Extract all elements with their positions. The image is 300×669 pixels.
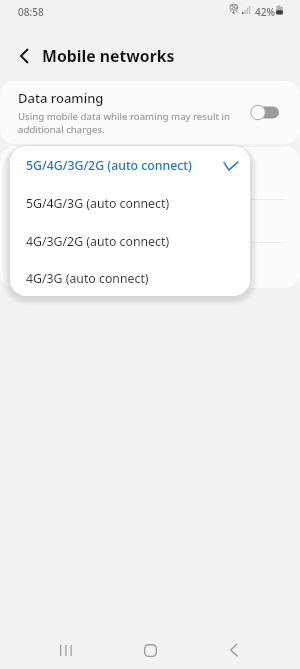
staticText: Mobile networks <box>42 45 175 67</box>
button[interactable]: Navigate up <box>6 36 42 76</box>
button[interactable]: 5G/4G/3G (auto connect) <box>10 184 250 222</box>
staticText: 4G/3G/2G (auto connect) <box>26 233 170 250</box>
button[interactable]: 5G/4G/3G/2G (auto connect) <box>10 146 250 184</box>
staticText: 5G <box>231 4 238 11</box>
button[interactable]: 4G/3G (auto connect) <box>10 260 250 296</box>
staticText: 4G/3G (auto connect) <box>26 270 149 287</box>
button[interactable]: Back <box>206 627 262 669</box>
button[interactable]: Home <box>122 627 178 669</box>
button[interactable]: Data roaming <box>0 81 300 144</box>
staticText: 42% <box>255 5 275 19</box>
staticText: 08:58 <box>18 5 44 19</box>
staticText: Using mobile data while roaming may resu… <box>18 110 242 136</box>
button[interactable]: 4G/3G/2G (auto connect) <box>10 222 250 260</box>
staticText: 5G/4G/3G (auto connect) <box>26 195 170 212</box>
button[interactable]: Data roaming toggle <box>250 104 280 121</box>
button[interactable]: Recent apps <box>38 627 94 669</box>
staticText: Data roaming <box>18 89 104 107</box>
staticText: 5G/4G/3G/2G (auto connect) <box>26 157 192 174</box>
